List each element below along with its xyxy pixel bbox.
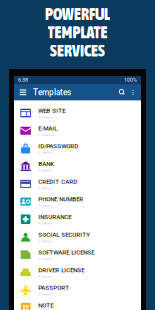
staticText: 6:38 xyxy=(18,77,28,83)
staticText: 3 items xyxy=(38,240,52,245)
staticText: DRIVER LICENSE xyxy=(38,266,84,274)
staticText: 3 items xyxy=(38,275,52,280)
button[interactable]: WEB SITE xyxy=(14,101,141,118)
button[interactable]: CREDIT CARD xyxy=(14,171,141,189)
staticText: 5 items xyxy=(38,222,52,227)
staticText: INSURANCE xyxy=(38,213,71,221)
button[interactable]: Menu xyxy=(17,84,29,100)
staticText: CREDIT CARD xyxy=(38,178,77,185)
button[interactable]: E-MAIL xyxy=(14,118,141,136)
button[interactable]: PASSPORT xyxy=(14,278,141,295)
staticText: 4 items xyxy=(38,293,52,298)
staticText: 6 items xyxy=(38,169,52,174)
button[interactable]: ID/PASSWORD xyxy=(14,136,141,154)
staticText: SOCIAL SECURITY xyxy=(38,231,90,238)
button[interactable]: BANK xyxy=(14,154,141,171)
staticText: WEB SITE xyxy=(38,107,65,114)
staticText: 3 items xyxy=(38,204,52,209)
staticText: ID/PASSWORD xyxy=(38,143,78,150)
button[interactable]: PHONE NUMBER xyxy=(14,189,141,207)
staticText: SOFTWARE LICENSE xyxy=(38,249,94,256)
staticText: NOTE xyxy=(38,302,53,309)
staticText: 3 items xyxy=(38,151,52,156)
staticText: 4 items xyxy=(38,257,52,263)
staticText: SERVICES xyxy=(50,42,105,60)
staticText: PASSPORT xyxy=(38,284,69,291)
button[interactable]: SOCIAL SECURITY xyxy=(14,224,141,242)
staticText: POWERFUL xyxy=(45,5,110,23)
staticText: 5 items xyxy=(38,116,52,121)
staticText: Templates xyxy=(33,87,71,97)
button[interactable]: INSURANCE xyxy=(14,207,141,224)
button[interactable]: DRIVER LICENSE xyxy=(14,260,141,278)
staticText: 5 items xyxy=(38,186,52,192)
staticText: 100% xyxy=(124,77,137,83)
staticText: 4 items xyxy=(38,133,52,139)
button[interactable]: Search xyxy=(116,84,128,100)
staticText: E-MAIL xyxy=(38,125,57,132)
staticText: PHONE NUMBER xyxy=(38,196,83,203)
button[interactable]: More options xyxy=(128,84,138,100)
staticText: BANK xyxy=(38,160,54,167)
button[interactable]: SOFTWARE LICENSE xyxy=(14,242,141,260)
staticText: TEMPLATE xyxy=(47,23,107,42)
button[interactable]: NOTE xyxy=(14,295,141,310)
